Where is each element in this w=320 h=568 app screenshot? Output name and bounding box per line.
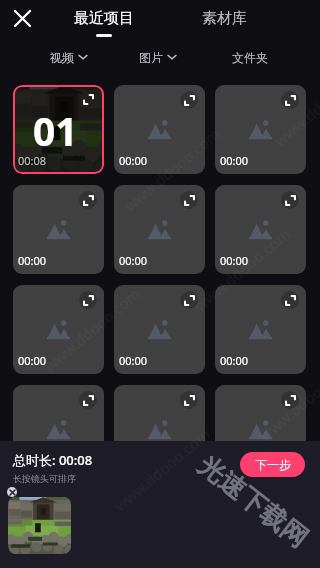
staticText: www.ddooo.com [40,283,144,375]
staticText: 00:00 [119,353,148,368]
staticText: 00:00 [220,353,249,368]
staticText: www.ddooo.com [190,223,294,315]
staticText: 00:00 [220,253,249,268]
button[interactable]: Preview [281,91,299,109]
button[interactable]: Preview [114,285,205,374]
staticText: 01 [33,104,78,157]
button[interactable]: Preview [13,285,104,374]
staticText: 最近项目 [74,9,134,28]
staticText: 文件夹 [232,50,268,65]
staticText: 视频 [50,50,74,65]
staticText: www.ddooo.com [255,353,320,445]
staticText: 00:08 [18,153,47,168]
staticText: 00:00 [18,353,47,368]
button[interactable]: Preview [215,85,306,174]
button[interactable]: 素材库 [189,0,259,40]
staticText: 00:00 [119,153,148,168]
button[interactable]: Preview [79,291,97,309]
button[interactable]: Preview [13,385,104,474]
staticText: 00:00 [220,453,249,468]
button[interactable]: Preview [215,385,306,474]
staticText: www.ddooo.com [270,58,320,150]
button[interactable] [8,497,71,554]
staticText: 00:00 [18,253,47,268]
button[interactable]: Preview [79,90,97,108]
button[interactable]: 最近项目 [69,0,139,40]
button[interactable]: Preview [114,385,205,474]
button[interactable]: 下一步 [240,452,305,477]
staticText: 图片 [139,50,163,65]
button[interactable]: Remove [7,487,17,497]
button[interactable]: Preview [79,191,97,209]
button[interactable]: Preview [215,185,306,274]
button[interactable]: Preview [180,191,198,209]
button[interactable]: Preview [180,391,198,409]
staticText: 下一步 [255,457,291,472]
staticText: www.ddooo.com [110,423,214,515]
button[interactable]: Preview [215,285,306,374]
button[interactable]: Preview [114,185,205,274]
button[interactable]: Preview [13,185,104,274]
staticText: 00:00 [18,453,47,468]
button[interactable]: Preview [281,391,299,409]
staticText: 光速下载网 [192,449,314,555]
staticText: 总时长: 00:08 [13,451,93,469]
button[interactable]: Preview [13,85,104,174]
staticText: 素材库 [202,9,247,28]
button[interactable]: Preview [281,291,299,309]
staticText: 00:00 [220,153,249,168]
staticText: 00:00 [119,253,148,268]
button[interactable]: Preview [79,391,97,409]
staticText: 长按镜头可排序 [13,473,76,484]
button[interactable]: Preview [114,85,205,174]
button[interactable]: 图片 [122,44,192,70]
staticText: www.ddooo.com [120,123,224,215]
button[interactable]: Preview [281,191,299,209]
button[interactable]: Preview [180,291,198,309]
button[interactable]: 文件夹 [215,44,285,70]
button[interactable]: 视频 [33,44,103,70]
button[interactable]: Close [8,4,36,32]
button[interactable]: Preview [180,91,198,109]
